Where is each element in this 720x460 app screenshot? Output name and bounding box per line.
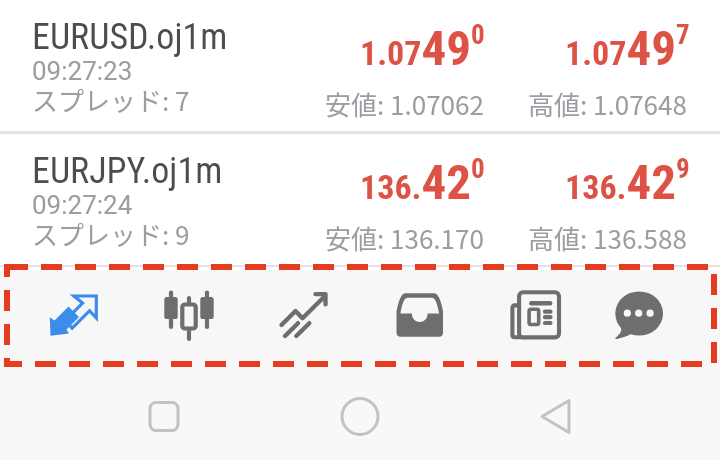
staticText: 安値: 1.07062 xyxy=(325,85,484,123)
staticText: EURJPY.oj1m xyxy=(32,150,223,192)
staticText: 136.429 xyxy=(565,153,690,211)
staticText: 09:27:24 xyxy=(32,190,133,220)
staticText: 136.420 xyxy=(360,153,485,211)
button[interactable]: Chat xyxy=(605,270,673,367)
button[interactable]: History xyxy=(386,270,454,367)
button[interactable]: Trade xyxy=(269,270,337,367)
staticText: 1.07490 xyxy=(360,19,485,77)
staticText: 09:27:23 xyxy=(32,56,133,86)
staticText: スプレッド: 9 xyxy=(32,215,190,253)
staticText: 高値: 1.07648 xyxy=(528,85,687,123)
staticText: スプレッド: 7 xyxy=(32,81,190,119)
staticText: 高値: 136.588 xyxy=(528,219,687,257)
button[interactable]: News xyxy=(500,270,568,367)
button[interactable]: Charts xyxy=(155,270,223,367)
button[interactable]: Quotes xyxy=(40,270,108,367)
staticText: 安値: 136.170 xyxy=(325,219,484,257)
staticText: EURUSD.oj1m xyxy=(32,16,228,58)
staticText: 1.07497 xyxy=(565,19,690,77)
